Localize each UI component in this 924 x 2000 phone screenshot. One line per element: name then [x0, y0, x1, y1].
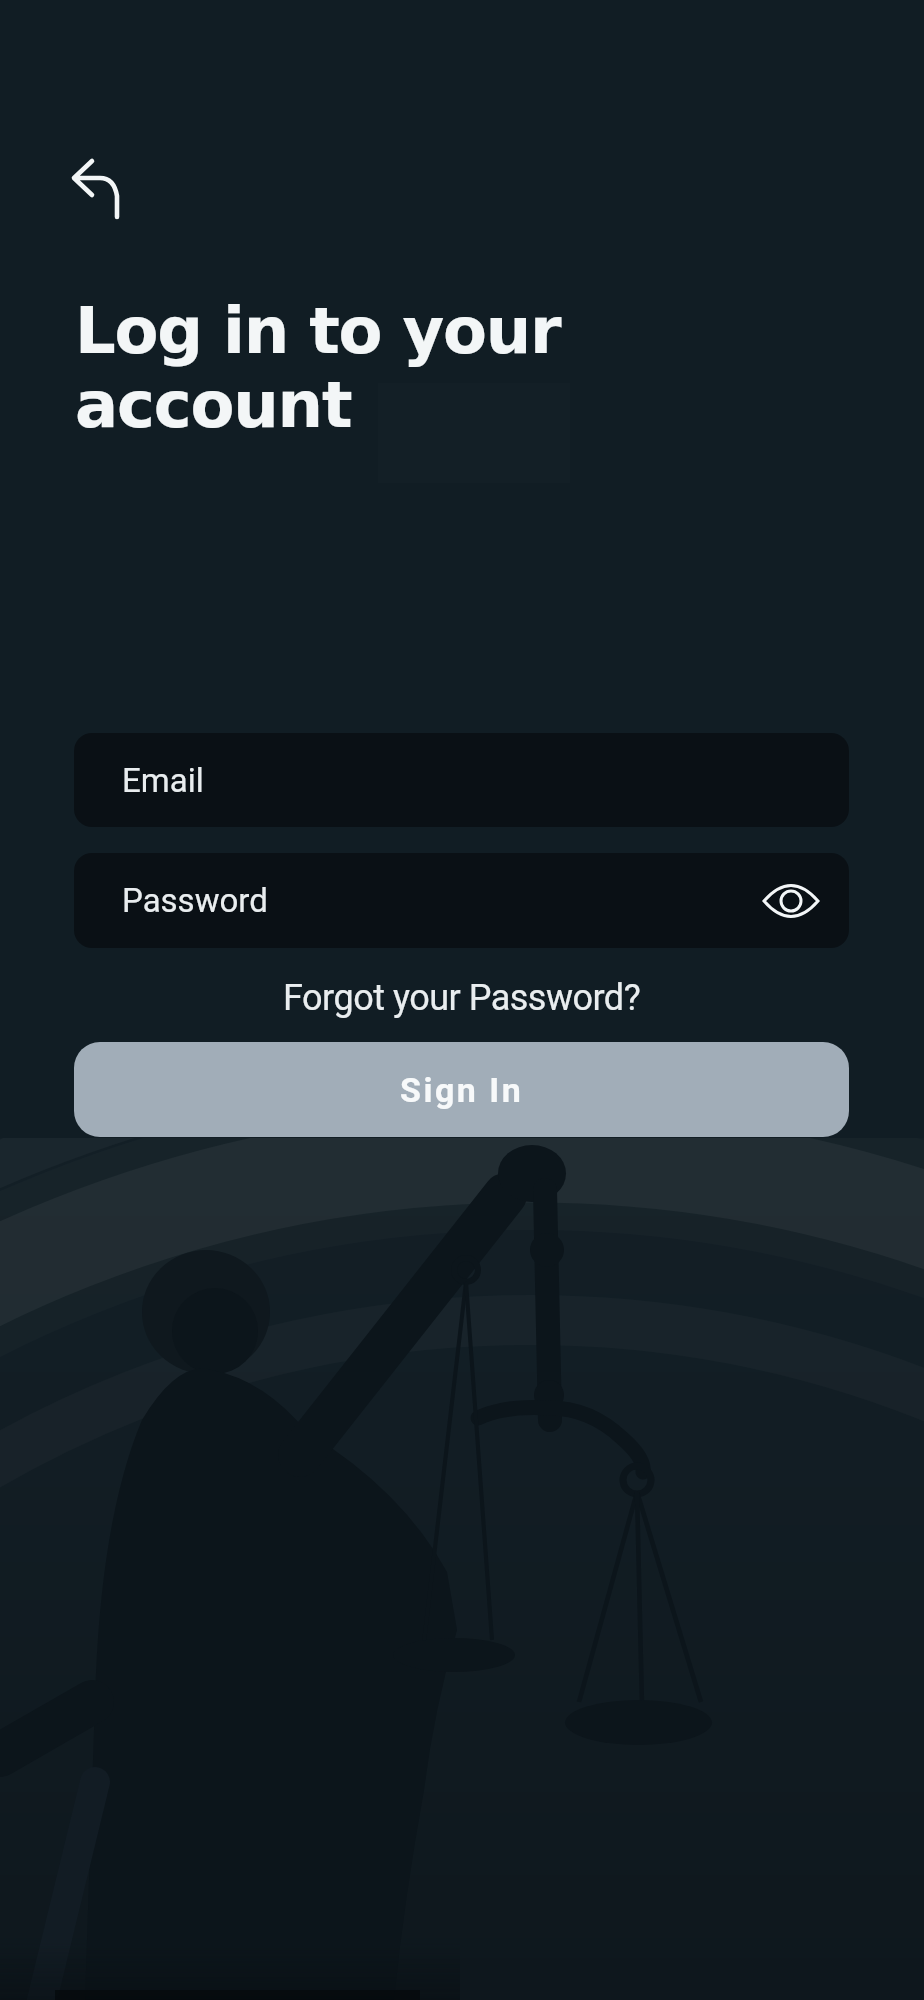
button[interactable]: Forgot your Password?: [252, 972, 672, 1024]
button[interactable]: Sign In: [74, 1042, 849, 1137]
staticText: Password: [122, 881, 268, 920]
button[interactable]: Email: [74, 733, 849, 827]
button[interactable]: Password: [74, 853, 849, 948]
button[interactable]: [64, 150, 136, 226]
staticText: Forgot your Password?: [283, 977, 641, 1019]
staticText: Log in to your account: [75, 294, 561, 442]
staticText: Email: [122, 761, 204, 800]
staticText: Sign In: [400, 1070, 524, 1110]
